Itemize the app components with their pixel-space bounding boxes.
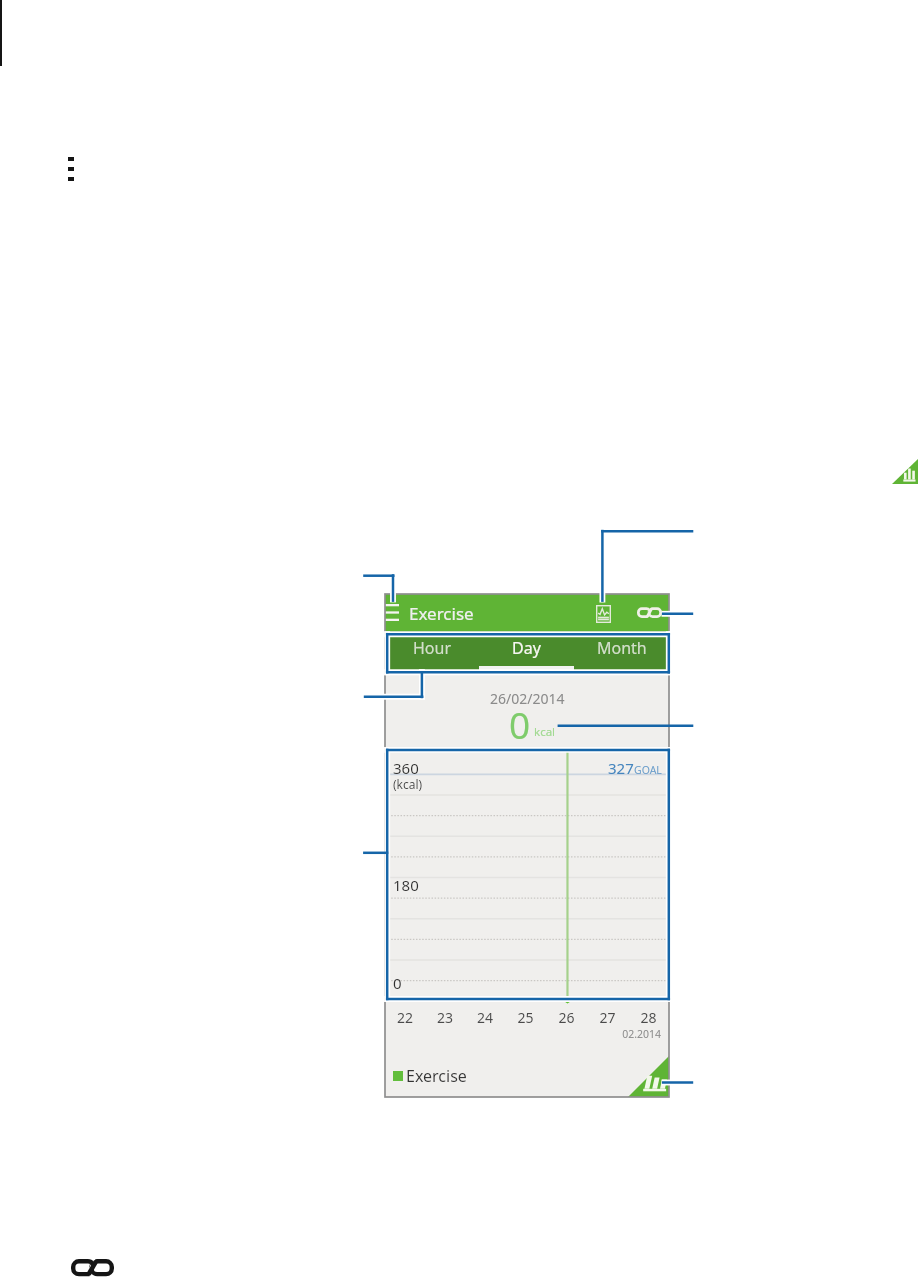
- button[interactable]: Month: [574, 631, 669, 670]
- staticText: 180: [393, 875, 419, 895]
- staticText: 327: [608, 758, 634, 778]
- staticText: 0: [509, 699, 531, 749]
- staticText: 02.2014: [385, 1027, 661, 1041]
- staticText: 26/02/2014: [490, 689, 565, 708]
- button[interactable]: Hour: [385, 631, 479, 670]
- staticText: 24: [465, 1008, 505, 1027]
- button[interactable]: Show chart: [628, 1056, 669, 1097]
- button[interactable]: Exercise: [393, 1065, 467, 1087]
- staticText: kcal: [534, 724, 556, 740]
- staticText: 28: [628, 1008, 669, 1027]
- staticText: 360: [393, 758, 419, 778]
- staticText: 23: [425, 1008, 465, 1027]
- staticText: 25: [505, 1008, 546, 1027]
- staticText: 22: [385, 1008, 425, 1027]
- button[interactable]: Day: [479, 631, 574, 670]
- staticText: 26: [546, 1008, 587, 1027]
- staticText: Hour: [413, 637, 452, 659]
- staticText: Month: [597, 637, 647, 659]
- button[interactable]: Chart: [599, 594, 631, 631]
- staticText: GOAL: [634, 763, 662, 777]
- staticText: 0: [393, 973, 402, 993]
- button[interactable]: Menu: [385, 594, 409, 631]
- staticText: 27: [587, 1008, 628, 1027]
- staticText: (kcal): [393, 776, 423, 792]
- staticText: Exercise: [406, 1065, 467, 1087]
- button[interactable]: Link accessories: [631, 594, 669, 631]
- staticText: Exercise: [409, 602, 474, 625]
- staticText: Day: [512, 637, 541, 659]
